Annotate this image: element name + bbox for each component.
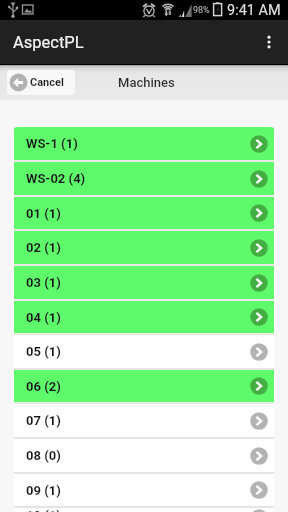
staticText: WS-1 (1) — [26, 136, 78, 151]
button[interactable]: More options — [248, 22, 288, 62]
staticText: 05 (1) — [26, 344, 61, 359]
staticText: 01 (1) — [26, 206, 61, 221]
staticText: AspectPL — [13, 33, 84, 52]
staticText: 10 (1) — [26, 508, 61, 512]
staticText: 09 (1) — [26, 483, 61, 498]
button[interactable]: WS-1 (1) — [14, 127, 274, 160]
button[interactable]: 08 (0) — [14, 439, 274, 472]
staticText: 9:41 AM — [227, 2, 281, 19]
button[interactable]: 07 (1) — [14, 404, 274, 437]
staticText: 03 (1) — [26, 275, 61, 290]
button[interactable]: 05 (1) — [14, 335, 274, 368]
staticText: 08 (0) — [26, 448, 61, 463]
button[interactable]: 06 (2) — [14, 370, 274, 402]
staticText: 04 (1) — [26, 310, 61, 325]
button[interactable]: 03 (1) — [14, 266, 274, 299]
staticText: Cancel — [30, 76, 64, 89]
button[interactable]: Cancel — [7, 70, 75, 95]
staticText: WS-02 (4) — [26, 171, 86, 186]
button[interactable]: 04 (1) — [14, 301, 274, 333]
staticText: 06 (2) — [26, 379, 61, 394]
staticText: 98% — [193, 5, 210, 16]
button[interactable]: 02 (1) — [14, 231, 274, 264]
button[interactable]: 10 (1) — [14, 508, 274, 512]
button[interactable]: 01 (1) — [14, 197, 274, 229]
staticText: Machines — [118, 75, 175, 90]
button[interactable]: 09 (1) — [14, 474, 274, 506]
staticText: 02 (1) — [26, 240, 61, 255]
button[interactable]: WS-02 (4) — [14, 162, 274, 195]
staticText: 07 (1) — [26, 413, 61, 428]
